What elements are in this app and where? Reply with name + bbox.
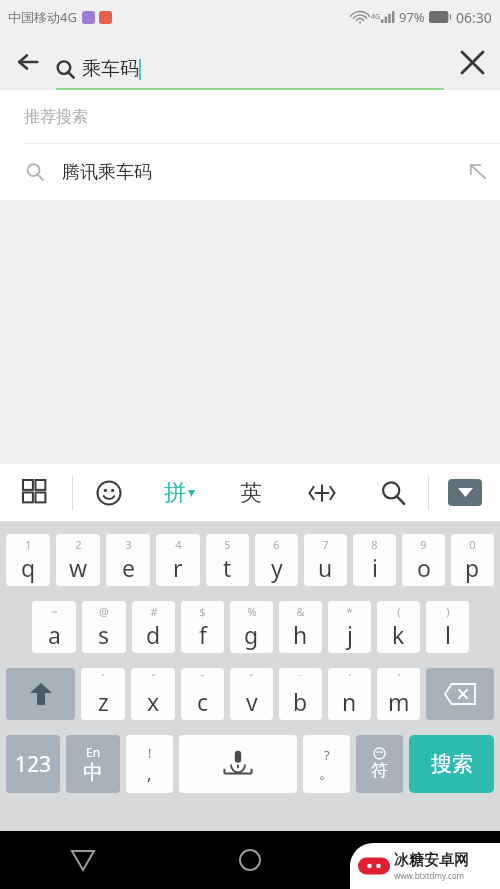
- button[interactable]: Back: [0, 34, 56, 90]
- button[interactable]: 5: [206, 534, 249, 586]
- staticText: ˊ: [348, 671, 352, 686]
- staticText: p: [465, 552, 480, 583]
- button[interactable]: Clear: [444, 34, 500, 90]
- staticText: (: [397, 604, 401, 619]
- button[interactable]: 乘车码: [56, 34, 444, 90]
- staticText: 06:30: [456, 8, 492, 27]
- button[interactable]: 4: [156, 534, 200, 586]
- button[interactable]: 1: [6, 534, 50, 586]
- button[interactable]: 腾讯乘车码: [0, 144, 500, 200]
- staticText: &: [296, 604, 305, 619]
- button[interactable]: 拼: [144, 464, 215, 521]
- staticText: h: [293, 619, 308, 650]
- staticText: ~: [51, 604, 58, 619]
- staticText: k: [392, 619, 405, 650]
- button[interactable]: 搜索: [409, 735, 494, 793]
- button[interactable]: ˊ: [328, 668, 371, 720]
- staticText: i: [372, 552, 378, 583]
- staticText: 4: [175, 537, 182, 552]
- staticText: ˘: [249, 671, 254, 686]
- button[interactable]: Keyboard width: [286, 464, 357, 521]
- button[interactable]: ˉ: [181, 668, 224, 720]
- button[interactable]: #: [132, 601, 175, 653]
- staticText: 中: [83, 760, 103, 785]
- staticText: f: [199, 619, 207, 650]
- staticText: 8: [371, 537, 378, 552]
- button[interactable]: 7: [304, 534, 347, 586]
- staticText: ?: [324, 746, 330, 764]
- staticText: $: [199, 604, 206, 619]
- button[interactable]: Fill query: [456, 150, 500, 194]
- staticText: 拼: [164, 479, 186, 507]
- button[interactable]: ˘: [230, 668, 273, 720]
- staticText: 7: [322, 537, 329, 552]
- button[interactable]: Recents: [333, 831, 500, 889]
- staticText: t: [223, 552, 232, 583]
- button[interactable]: Hide keyboard: [429, 464, 500, 521]
- staticText: 符: [371, 760, 388, 781]
- staticText: ˋ: [397, 671, 401, 686]
- button[interactable]: 8: [353, 534, 396, 586]
- button[interactable]: ˊ: [81, 668, 125, 720]
- staticText: 乘车码: [82, 57, 139, 81]
- button[interactable]: Home: [166, 831, 333, 889]
- button[interactable]: Keyboard layouts: [0, 464, 72, 521]
- staticText: 冰糖安卓网: [394, 851, 469, 870]
- button[interactable]: Emoji: [73, 464, 144, 521]
- staticText: 123: [15, 750, 52, 779]
- button[interactable]: 3: [106, 534, 150, 586]
- button[interactable]: @: [82, 601, 126, 653]
- staticText: ˊ: [101, 671, 105, 686]
- button[interactable]: %: [230, 601, 273, 653]
- button[interactable]: &: [279, 601, 322, 653]
- button[interactable]: 6: [255, 534, 298, 586]
- button[interactable]: Shift: [6, 668, 75, 720]
- staticText: %: [247, 604, 257, 619]
- staticText: 5: [224, 537, 231, 552]
- button[interactable]: Space: [179, 735, 297, 793]
- button[interactable]: Search: [357, 464, 428, 521]
- staticText: j: [347, 619, 353, 650]
- button[interactable]: (: [377, 601, 420, 653]
- staticText: ): [446, 604, 450, 619]
- staticText: g: [244, 619, 259, 650]
- staticText: q: [21, 552, 36, 583]
- button[interactable]: Switch language: [66, 735, 120, 793]
- staticText: b: [293, 686, 308, 717]
- button[interactable]: ?: [303, 735, 350, 793]
- staticText: z: [98, 686, 109, 717]
- button[interactable]: Back: [0, 831, 166, 889]
- staticText: www.btxtdmy.com: [394, 870, 465, 881]
- button[interactable]: Symbols: [356, 735, 403, 793]
- staticText: m: [388, 686, 410, 717]
- staticText: s: [98, 619, 110, 650]
- button[interactable]: 9: [402, 534, 445, 586]
- staticText: 4G: [371, 12, 381, 22]
- staticText: ˇ: [151, 671, 156, 686]
- staticText: d: [146, 619, 161, 650]
- staticText: n: [342, 686, 357, 717]
- button[interactable]: Backspace: [426, 668, 494, 720]
- button[interactable]: 英: [215, 464, 286, 521]
- button[interactable]: Numbers: [6, 735, 60, 793]
- button[interactable]: ¨: [279, 668, 322, 720]
- button[interactable]: 0: [451, 534, 494, 586]
- staticText: w: [69, 552, 88, 583]
- button[interactable]: !: [126, 735, 173, 793]
- staticText: 英: [240, 479, 262, 507]
- staticText: ˉ: [200, 671, 205, 686]
- staticText: y: [271, 552, 283, 583]
- button[interactable]: ˋ: [377, 668, 420, 720]
- staticText: u: [318, 552, 333, 583]
- staticText: *: [346, 604, 353, 619]
- staticText: ¨: [297, 671, 304, 686]
- button[interactable]: $: [181, 601, 224, 653]
- button[interactable]: ~: [32, 601, 76, 653]
- staticText: e: [122, 552, 135, 583]
- button[interactable]: ˇ: [131, 668, 175, 720]
- button[interactable]: 2: [56, 534, 100, 586]
- button[interactable]: ): [426, 601, 469, 653]
- staticText: l: [445, 619, 451, 650]
- staticText: 1: [25, 537, 32, 552]
- button[interactable]: *: [328, 601, 371, 653]
